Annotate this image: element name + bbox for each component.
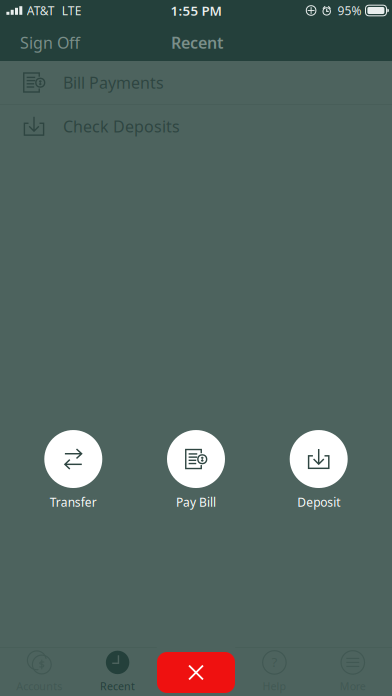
staticText: Bill Payments xyxy=(63,72,164,93)
staticText: 1:55 PM xyxy=(170,2,221,19)
staticText: 95% xyxy=(337,2,361,18)
staticText: Help xyxy=(262,679,286,693)
staticText: Sign Off xyxy=(20,32,80,53)
staticText: Deposit xyxy=(297,494,340,510)
button[interactable]: Recent xyxy=(78,647,157,696)
button[interactable]: Pay Bill xyxy=(135,431,257,509)
staticText: Accounts xyxy=(16,679,62,693)
staticText: Pay Bill xyxy=(176,494,216,510)
staticText: More xyxy=(340,679,366,693)
button[interactable]: Close menu xyxy=(157,652,235,693)
button[interactable]: Check Deposits xyxy=(0,105,392,148)
staticText: LTE xyxy=(62,2,82,18)
staticText: Check Deposits xyxy=(63,116,180,137)
staticText: ? xyxy=(271,653,277,671)
staticText: AT&T xyxy=(27,2,55,18)
staticText: Recent xyxy=(171,32,223,53)
button[interactable]: Sign Off xyxy=(0,24,100,61)
button[interactable]: Bill Payments xyxy=(0,61,392,104)
button[interactable]: Transfer xyxy=(12,431,135,509)
button[interactable]: Deposit xyxy=(257,431,380,509)
staticText: Transfer xyxy=(50,494,97,510)
staticText: Recent xyxy=(100,679,135,693)
